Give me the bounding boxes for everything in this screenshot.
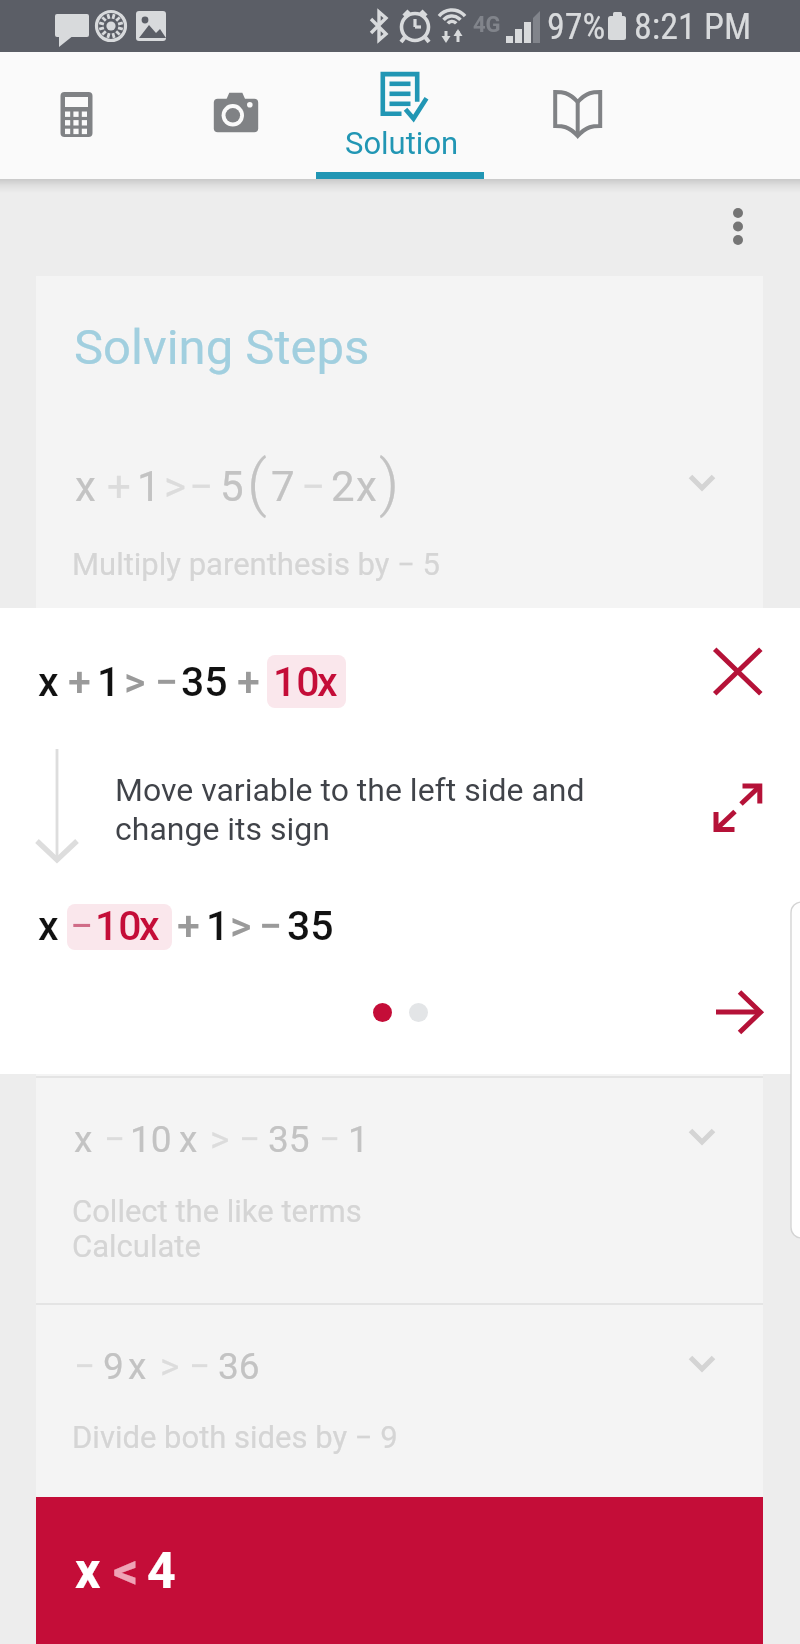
staticText: 1 <box>206 902 230 950</box>
staticText: + <box>237 658 260 706</box>
staticText: 4G <box>473 12 501 38</box>
staticText: + <box>68 658 91 706</box>
staticText: Multiply parenthesis by − 5 <box>72 546 441 582</box>
staticText: ( <box>247 446 267 519</box>
staticText: + <box>107 462 131 511</box>
staticText: − <box>74 1345 96 1388</box>
staticText: + <box>177 902 200 950</box>
staticText: ) <box>379 446 400 519</box>
staticText: 35 <box>268 1118 310 1161</box>
staticText: > <box>164 462 186 511</box>
button[interactable]: More options <box>714 190 762 238</box>
staticText: 2 <box>331 462 355 511</box>
staticText: 10 <box>130 1118 172 1161</box>
staticText: − <box>104 1118 126 1161</box>
staticText: x <box>356 462 377 511</box>
staticText: − <box>70 902 94 950</box>
button[interactable]: Next <box>698 972 778 1052</box>
staticText: > <box>160 1345 180 1388</box>
button[interactable]: Close <box>698 633 778 713</box>
staticText: x <box>75 1542 101 1601</box>
staticText: 8:21 PM <box>634 6 752 48</box>
button[interactable]: Camera <box>165 52 330 179</box>
staticText: − <box>189 1345 211 1388</box>
staticText: − <box>239 1118 261 1161</box>
staticText: 36 <box>218 1345 260 1388</box>
staticText: 1 <box>348 1118 369 1161</box>
staticText: − <box>301 462 326 511</box>
staticText: 35 <box>287 902 334 950</box>
staticText: 4 <box>147 1542 176 1601</box>
staticText: Solution <box>345 125 459 161</box>
staticText: > <box>230 902 252 950</box>
button[interactable]: Expand <box>698 760 778 840</box>
staticText: x <box>38 658 59 706</box>
staticText: 97% <box>547 6 606 48</box>
button[interactable]: x <box>36 431 763 611</box>
button[interactable]: Expand step <box>688 1128 716 1146</box>
staticText: 7 <box>271 462 295 511</box>
staticText: < <box>113 1542 139 1601</box>
staticText: 1 <box>137 462 161 511</box>
staticText: x <box>179 1118 198 1161</box>
button[interactable]: Calculator <box>0 52 165 179</box>
button[interactable]: Expand step <box>688 1355 716 1373</box>
button[interactable]: Book <box>495 52 800 179</box>
button[interactable]: − <box>36 1313 763 1480</box>
staticText: x <box>317 658 338 706</box>
staticText: − <box>189 462 214 511</box>
staticText: 10 <box>95 902 142 950</box>
staticText: x <box>139 902 160 950</box>
button[interactable]: x <box>36 1086 763 1254</box>
staticText: x <box>74 1118 93 1161</box>
staticText: x <box>38 902 59 950</box>
staticText: Divide both sides by − 9 <box>72 1419 398 1454</box>
staticText: change its sign <box>115 810 330 848</box>
staticText: 1 <box>97 658 121 706</box>
staticText: 35 <box>181 658 228 706</box>
staticText: − <box>155 658 179 706</box>
staticText: 9 <box>103 1345 124 1388</box>
staticText: > <box>210 1118 230 1161</box>
staticText: Move variable to the left side and <box>115 771 585 809</box>
button[interactable]: Page 2 <box>409 1003 428 1022</box>
staticText: > <box>124 658 146 706</box>
staticText: − <box>319 1118 341 1161</box>
staticText: Calculate <box>72 1228 201 1263</box>
staticText: Solving Steps <box>74 319 370 376</box>
button[interactable]: Page 1 <box>373 1003 392 1022</box>
staticText: 5 <box>220 462 244 511</box>
staticText: 10 <box>273 658 320 706</box>
staticText: x <box>75 462 96 511</box>
staticText: Collect the like terms <box>72 1193 362 1228</box>
staticText: x <box>128 1345 147 1388</box>
staticText: − <box>259 902 283 950</box>
button[interactable]: Solution <box>330 52 495 179</box>
button[interactable]: Expand step <box>688 474 716 492</box>
